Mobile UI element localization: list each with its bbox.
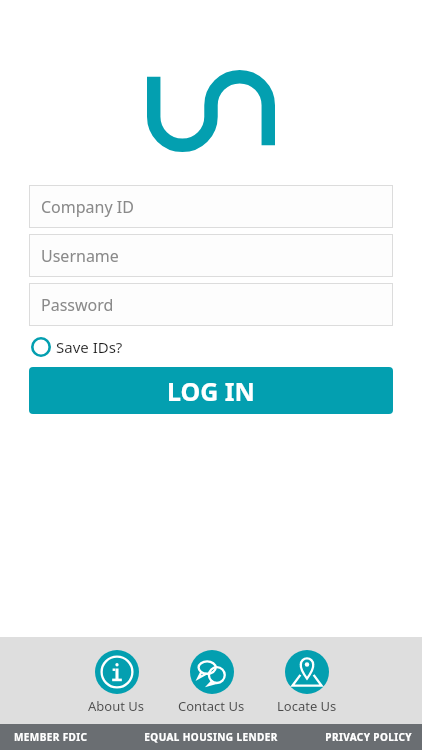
button[interactable]: About Us	[88, 637, 145, 715]
button[interactable]: Locate Us	[277, 637, 337, 715]
staticText: Username	[41, 245, 119, 267]
button[interactable]: Username	[29, 234, 393, 277]
staticText: EQUAL HOUSING LENDER	[130, 730, 292, 744]
staticText: Contact Us	[178, 697, 245, 715]
button[interactable]: Save IDs?	[29, 335, 125, 359]
staticText: LOG IN	[167, 374, 255, 408]
staticText: Save IDs?	[56, 337, 123, 357]
button[interactable]: LOG IN	[29, 367, 393, 414]
staticText: Company ID	[41, 196, 134, 218]
staticText: About Us	[88, 697, 145, 715]
button[interactable]: Password	[29, 283, 393, 326]
staticText: Password	[41, 294, 114, 316]
staticText: PRIVACY POLICY	[292, 730, 412, 744]
button[interactable]: Company ID	[29, 185, 393, 228]
staticText: MEMBER FDIC	[14, 730, 130, 744]
staticText: Locate Us	[277, 697, 337, 715]
button[interactable]: Contact Us	[178, 637, 245, 715]
